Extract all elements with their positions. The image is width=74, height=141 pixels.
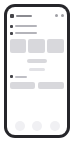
button[interactable]: Tab 2	[50, 121, 60, 131]
button[interactable]: Menu	[10, 14, 14, 18]
button[interactable]	[28, 39, 45, 53]
button[interactable]: Tab 1	[32, 121, 42, 131]
button[interactable]	[10, 23, 64, 29]
button[interactable]: Tab 0	[15, 121, 25, 131]
button[interactable]	[27, 59, 47, 63]
button[interactable]: More	[61, 14, 64, 17]
button[interactable]	[10, 82, 35, 89]
button[interactable]	[47, 39, 64, 53]
button[interactable]	[38, 82, 64, 89]
button[interactable]	[10, 30, 64, 36]
button[interactable]: Search	[55, 14, 58, 17]
button[interactable]	[10, 39, 26, 53]
